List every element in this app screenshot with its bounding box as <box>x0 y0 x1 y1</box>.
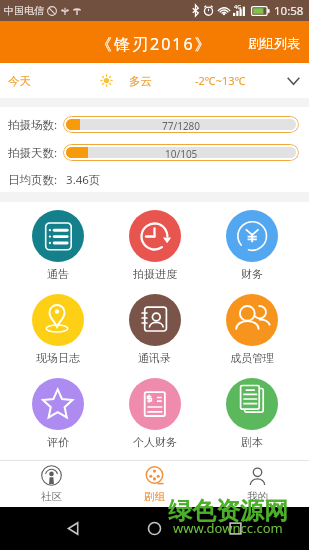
staticText: 评价 <box>47 435 69 449</box>
staticText: 剧组列表 <box>248 35 300 51</box>
button[interactable]: 通告 <box>9 202 106 286</box>
staticText: 现场日志 <box>36 351 80 365</box>
staticText: 财务 <box>241 267 263 281</box>
staticText: 中国电信 <box>4 4 44 17</box>
staticText: 10/105 <box>165 147 198 158</box>
button[interactable]: 剧组 <box>103 461 206 507</box>
staticText: 个人财务 <box>133 435 177 449</box>
staticText: 《锋刃2016》 <box>96 33 213 55</box>
staticText: 日均页数: 3.46页 <box>8 172 101 188</box>
staticText: 拍摄进度 <box>133 267 177 281</box>
button[interactable]: 成员管理 <box>203 286 300 370</box>
staticText: 通讯录 <box>138 351 171 365</box>
staticText: 通告 <box>47 267 69 281</box>
other: Home <box>147 521 162 536</box>
staticText: 社区 <box>41 490 62 503</box>
button[interactable]: 剧本 <box>203 370 300 454</box>
staticText: 拍摄天数: <box>8 145 58 161</box>
staticText: 今天 <box>8 74 31 88</box>
staticText: 我的 <box>247 490 268 503</box>
button[interactable]: 财务 <box>203 202 300 286</box>
staticText: 剧组 <box>144 490 165 503</box>
button[interactable]: 个人财务 <box>106 370 203 454</box>
staticText: 4G <box>234 3 242 10</box>
staticText: 剧本 <box>241 435 263 449</box>
staticText: 77/1280 <box>162 119 201 130</box>
other: Recents <box>228 521 243 536</box>
button[interactable]: 评价 <box>9 370 106 454</box>
other: Back <box>66 521 81 536</box>
staticText: 多云 <box>129 74 152 88</box>
staticText: -2℃~13℃ <box>195 73 246 88</box>
staticText: 绿色资源网 <box>168 496 288 526</box>
staticText: www.downcc.com <box>173 519 283 537</box>
button[interactable]: 拍摄进度 <box>106 202 203 286</box>
button[interactable]: 今天 <box>0 63 309 98</box>
button[interactable]: 现场日志 <box>9 286 106 370</box>
button[interactable]: 社区 <box>0 461 103 507</box>
button[interactable]: 我的 <box>206 461 309 507</box>
staticText: 成员管理 <box>230 351 274 365</box>
button[interactable]: 剧组列表 <box>237 21 309 63</box>
staticText: 10:58 <box>274 3 304 19</box>
staticText: 拍摄场数: <box>8 117 58 133</box>
button[interactable]: 通讯录 <box>106 286 203 370</box>
